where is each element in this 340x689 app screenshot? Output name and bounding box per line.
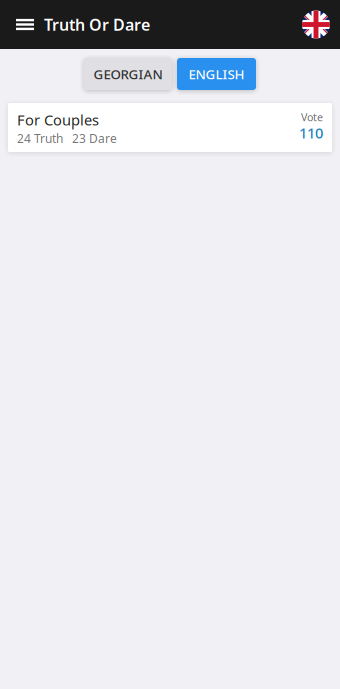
- button[interactable]: Change language: [296, 0, 340, 49]
- staticText: 23 Dare: [72, 130, 117, 146]
- button[interactable]: GEORGIAN: [84, 58, 172, 90]
- button[interactable]: Menu: [0, 0, 44, 49]
- staticText: ENGLISH: [188, 65, 244, 83]
- staticText: For Couples: [17, 110, 99, 129]
- staticText: 110: [299, 123, 323, 143]
- button[interactable]: For Couples: [8, 103, 332, 152]
- staticText: 24 Truth: [17, 130, 63, 146]
- staticText: Vote: [301, 110, 323, 124]
- staticText: GEORGIAN: [93, 65, 162, 83]
- staticText: Truth Or Dare: [44, 14, 150, 35]
- button[interactable]: ENGLISH: [177, 58, 256, 90]
